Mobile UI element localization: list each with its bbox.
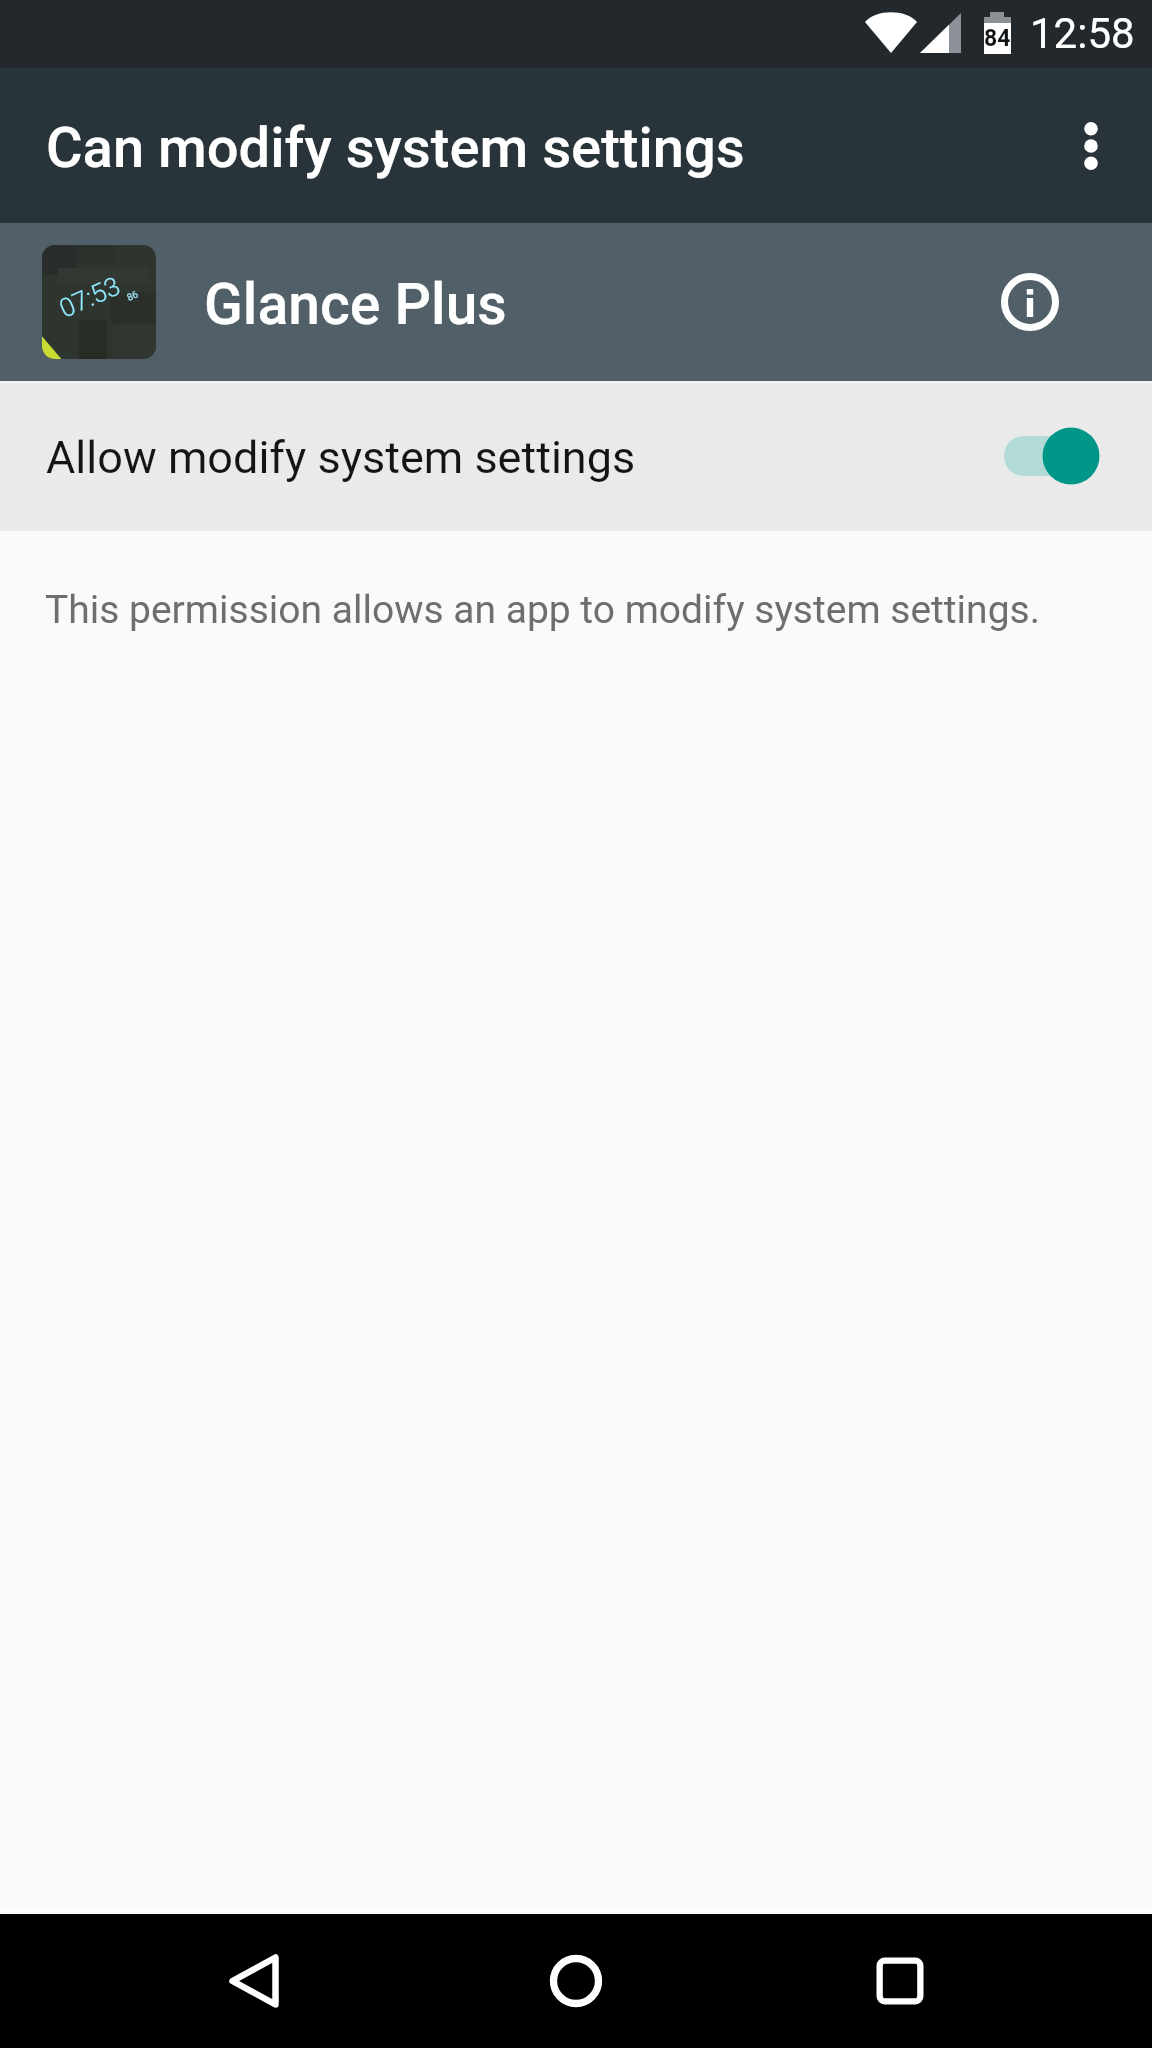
button[interactable]: App info — [960, 223, 1100, 381]
button[interactable]: Allow modify system settings — [0, 381, 1152, 531]
button[interactable]: Recent apps — [833, 1914, 967, 2048]
button[interactable]: Back — [189, 1914, 323, 2048]
button[interactable]: 07:53 — [0, 223, 1152, 381]
staticText: 12:58 — [1030, 9, 1135, 58]
staticText: 86 — [125, 288, 141, 304]
button[interactable]: More options — [1033, 68, 1149, 223]
button[interactable]: Home — [509, 1914, 643, 2048]
staticText: 84 — [984, 25, 1011, 52]
staticText: Glance Plus — [204, 271, 507, 338]
staticText: This permission allows an app to modify … — [45, 587, 1040, 633]
staticText: 07:53 — [55, 270, 125, 324]
staticText: Can modify system settings — [46, 115, 745, 181]
staticText: Allow modify system settings — [46, 431, 636, 484]
